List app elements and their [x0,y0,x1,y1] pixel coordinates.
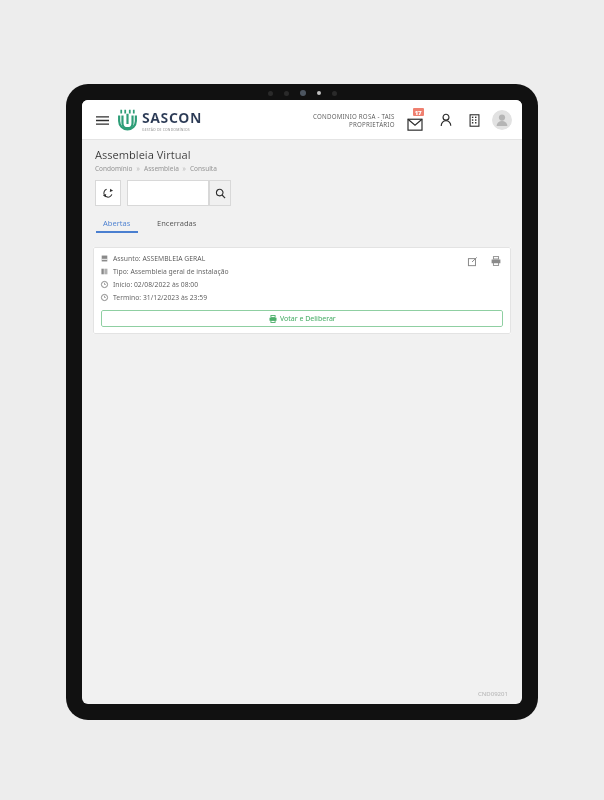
button[interactable]: Refresh [95,180,121,206]
staticText: Encerradas [157,218,197,228]
staticText: Assembleia Virtual [95,147,191,162]
staticText: Tipo: Assembleia geral de instalação [113,267,229,276]
staticText: Condomínio [95,164,133,173]
staticText: Assunto: ASSEMBLEIA GERAL [113,254,206,263]
staticText: SASCON [142,108,202,127]
staticText: Início: 02/08/2022 às 08:00 [113,280,199,289]
staticText: Consulta [190,164,217,173]
staticText: CONDOMINIO ROSA - TAIS [313,112,395,120]
staticText: PROPRIETÁRIO [349,120,395,128]
staticText: Assembleia [144,164,179,173]
button[interactable]: Open external [465,254,479,268]
staticText: » [179,164,190,173]
button[interactable]: Votar e Deliberar [101,310,503,327]
staticText: » [133,164,144,173]
button[interactable]: Print [489,254,503,268]
button[interactable]: Building [464,110,484,130]
button[interactable]: Encerradas [153,215,201,231]
staticText: Termino: 31/12/2023 às 23:59 [113,293,208,302]
staticText: Votar e Deliberar [280,314,336,324]
button[interactable]: Profile [436,110,456,130]
button[interactable]: Menu [92,110,112,130]
staticText: Abertas [103,218,131,228]
button[interactable]: Messages, 17 unread [404,109,426,131]
staticText: CND09201 [478,690,508,698]
button[interactable]: Abertas [95,215,139,233]
button[interactable]: Account avatar [492,110,512,130]
staticText: 17 [415,109,422,116]
button[interactable]: Search [209,180,231,206]
button[interactable] [127,180,209,206]
staticText: GESTÃO DE CONDOMÍNIOS [142,127,190,132]
